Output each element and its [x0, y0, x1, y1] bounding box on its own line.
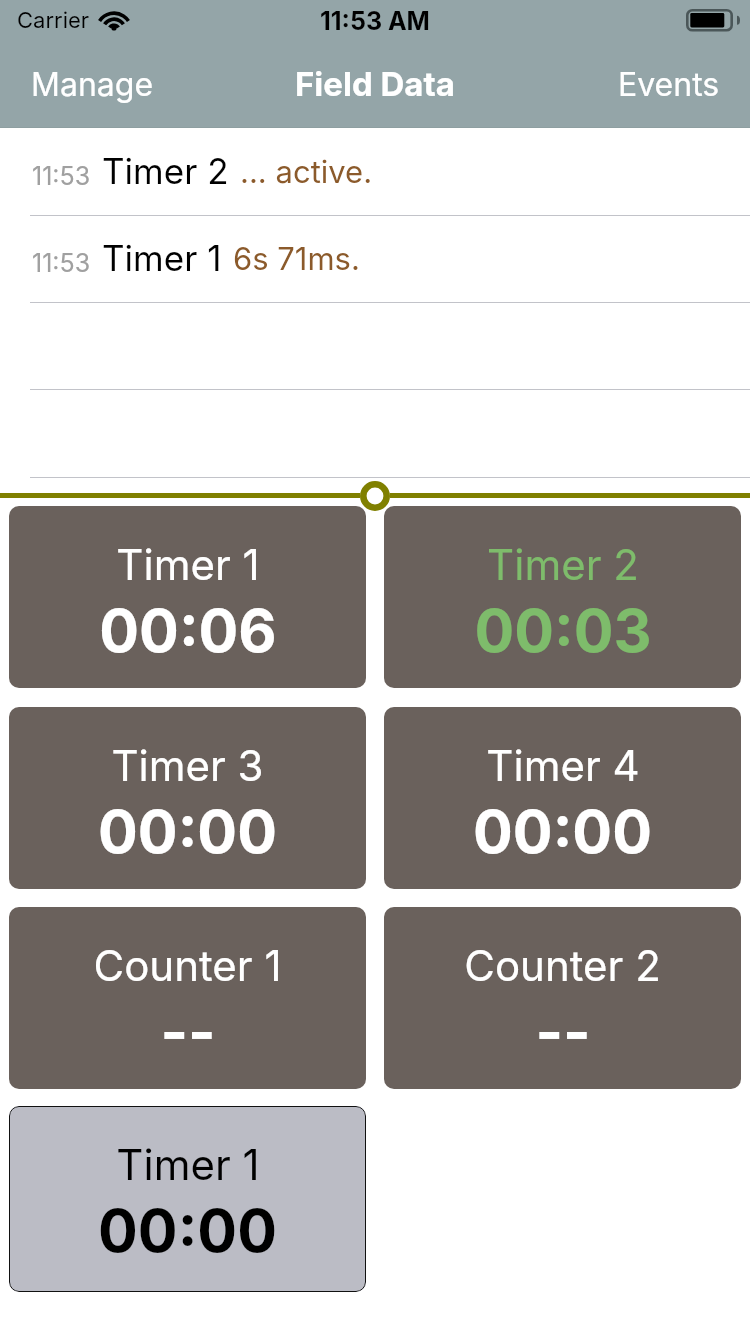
staticText: Events [618, 65, 720, 104]
staticText: Manage [31, 65, 154, 104]
staticText: Carrier [17, 7, 90, 34]
button[interactable]: Counter 1 [9, 907, 366, 1089]
staticText: 00:06 [99, 595, 277, 666]
staticText: 11:53 [32, 161, 91, 191]
staticText: Timer 4 [486, 740, 640, 791]
staticText: ... active. [240, 153, 373, 191]
staticText: 6s 71ms. [233, 240, 360, 278]
staticText: 00:03 [474, 595, 652, 666]
button[interactable]: Timer 3 [9, 707, 366, 889]
staticText: 11:53 [32, 248, 91, 278]
staticText: 11:53 AM [320, 6, 430, 36]
button[interactable]: Manage [0, 53, 176, 116]
button[interactable]: Resize handle [0, 479, 750, 513]
staticText: Timer 1 [116, 1139, 260, 1190]
button[interactable]: Timer 2 [384, 506, 741, 688]
button[interactable]: Counter 2 [384, 907, 741, 1089]
staticText: Field Data [295, 64, 455, 104]
button[interactable]: Timer 4 [384, 707, 741, 889]
staticText: -- [535, 996, 591, 1067]
button[interactable]: Timer 1 [9, 506, 366, 688]
staticText: 00:00 [98, 1195, 277, 1266]
button[interactable]: Events [596, 53, 750, 116]
staticText: Timer 2 [102, 150, 229, 192]
staticText: Timer 1 [116, 539, 260, 590]
button[interactable]: 11:53 [0, 128, 750, 215]
staticText: Timer 1 [102, 237, 222, 279]
staticText: Counter 2 [464, 940, 661, 991]
button[interactable]: Timer 1 [9, 1106, 366, 1292]
staticText: 00:00 [98, 796, 277, 867]
staticText: 00:00 [473, 796, 652, 867]
staticText: -- [160, 996, 216, 1067]
staticText: Timer 3 [111, 740, 264, 791]
button[interactable]: 11:53 [0, 215, 750, 302]
other: Wi-Fi signal [98, 10, 130, 30]
staticText: Counter 1 [93, 940, 282, 991]
staticText: Timer 2 [487, 539, 639, 590]
